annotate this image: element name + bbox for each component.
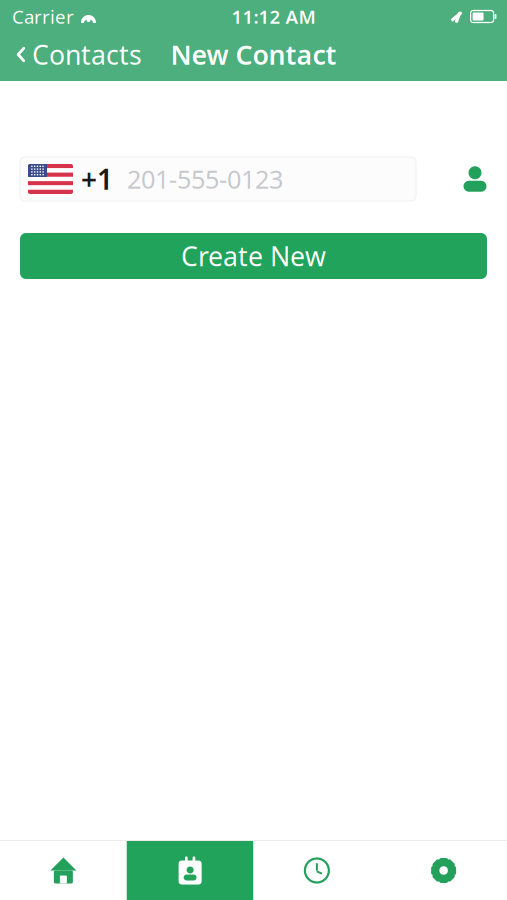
- button[interactable]: Contacts: [0, 32, 152, 76]
- staticText: New Contact: [170, 37, 336, 72]
- staticText: Contacts: [32, 37, 142, 72]
- button[interactable]: History: [253, 841, 380, 900]
- staticText: 201-555-0123: [127, 162, 283, 196]
- button[interactable]: Choose from contacts: [445, 157, 505, 201]
- button[interactable]: Home: [0, 841, 127, 900]
- button[interactable]: Create New: [20, 233, 487, 279]
- staticText: +1: [81, 160, 113, 198]
- button[interactable]: Settings: [380, 841, 507, 900]
- staticText: 11:12 AM: [231, 4, 315, 29]
- staticText: Carrier: [12, 4, 74, 29]
- button[interactable]: Contacts: [127, 841, 254, 900]
- staticText: Create New: [181, 238, 326, 274]
